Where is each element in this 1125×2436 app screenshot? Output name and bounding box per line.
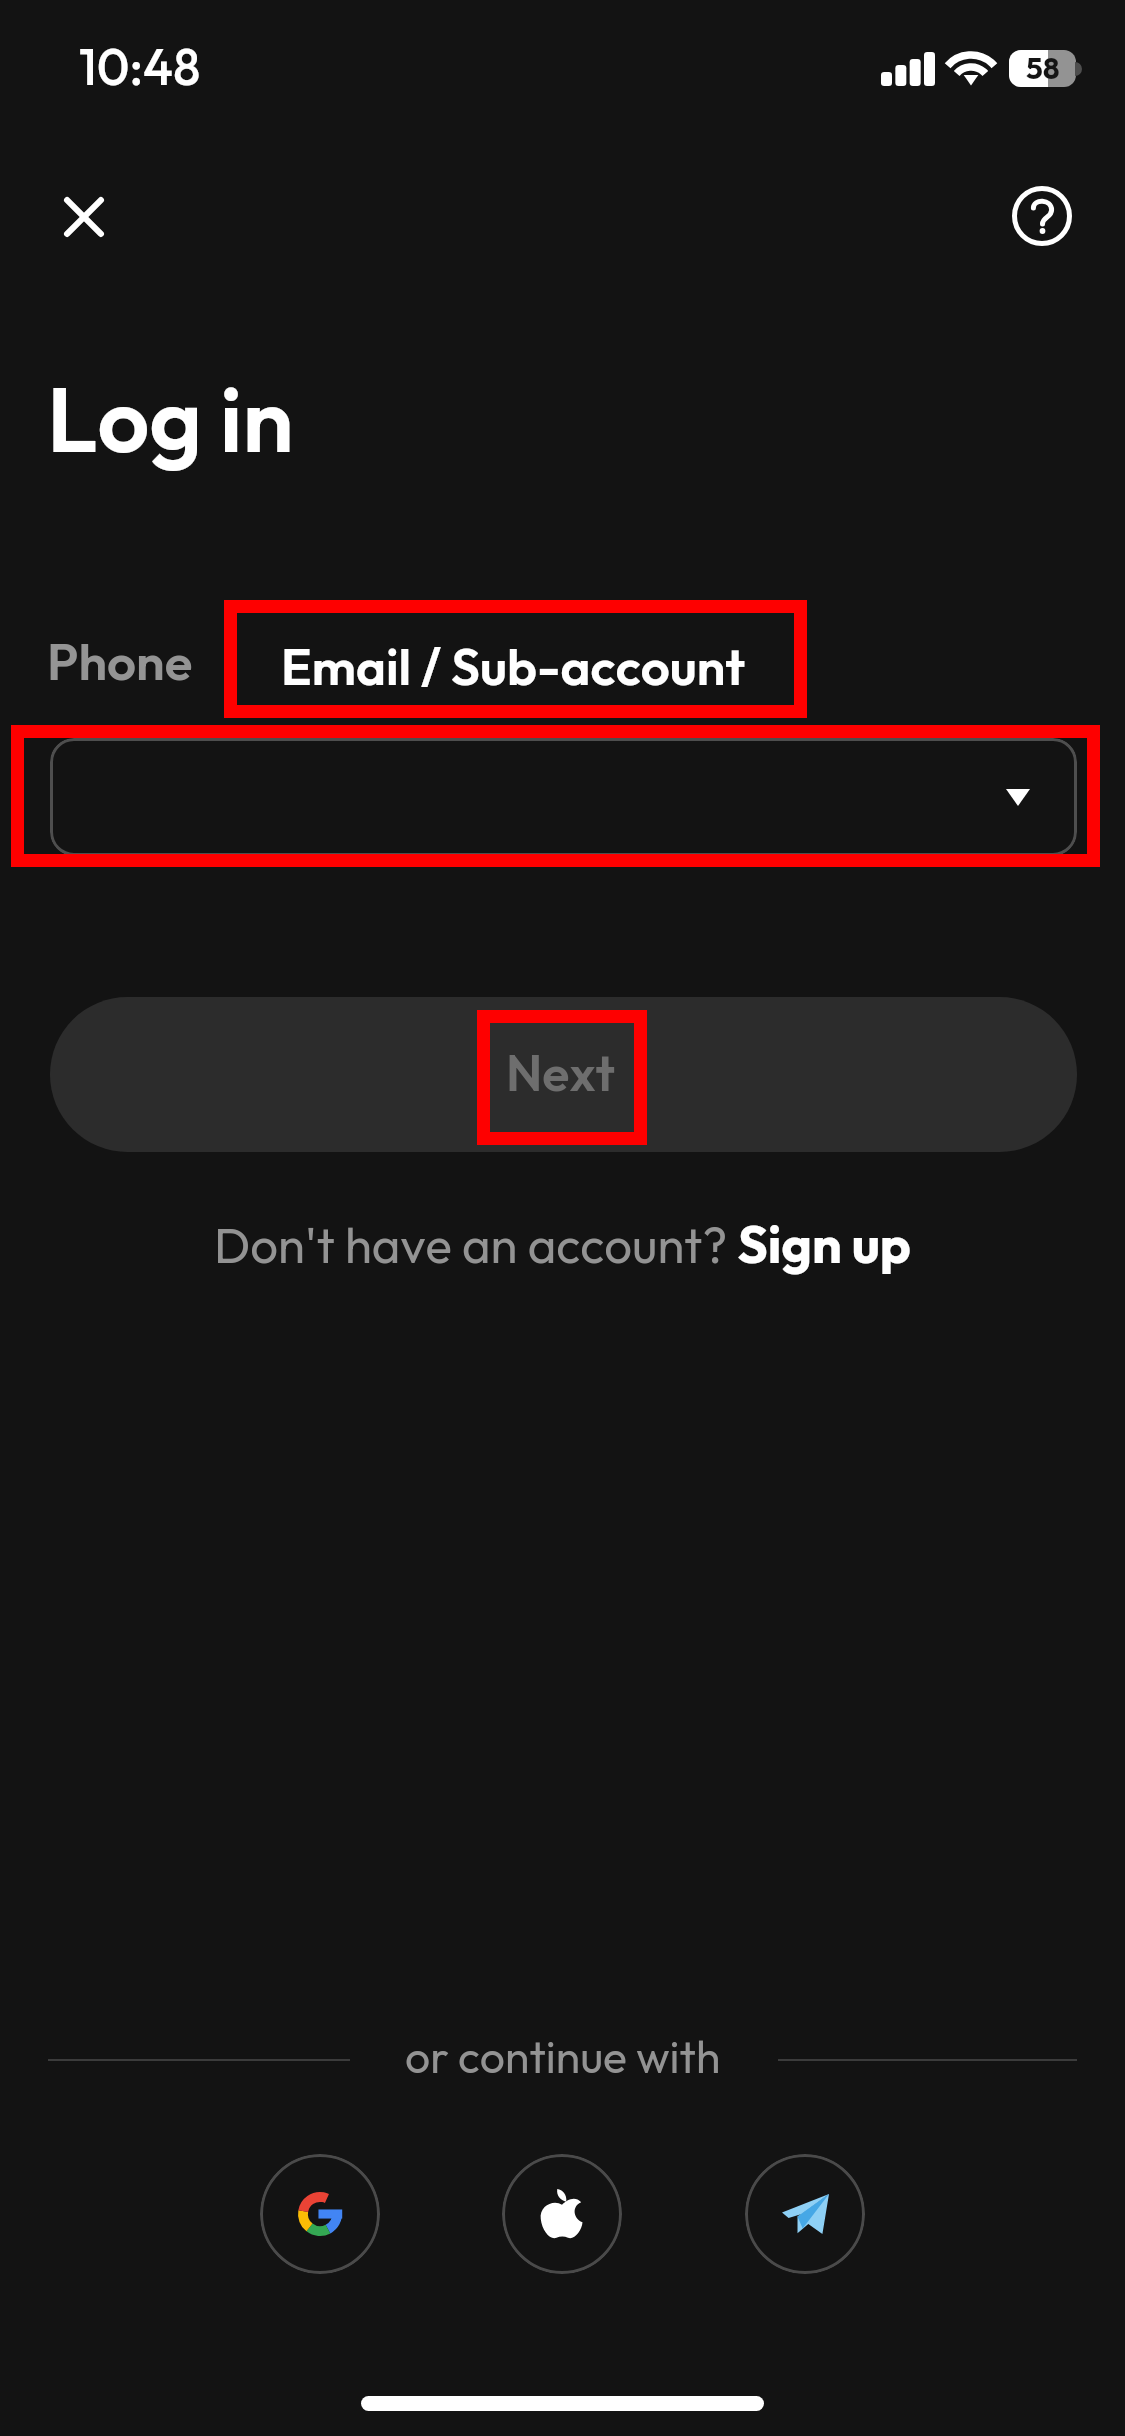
button[interactable]: Close [24,157,144,277]
button[interactable]: Email / Sub-account [275,624,752,708]
staticText: or continue with [405,2028,721,2084]
staticText: Phone [47,629,193,693]
button[interactable]: Next [50,997,1077,1152]
button[interactable]: Don't have an account? Sign up [204,1203,921,1285]
button[interactable]: Select account [50,738,1077,856]
button[interactable]: Phone [41,619,199,703]
staticText: 58 [1026,50,1060,86]
button[interactable]: Sign in with Telegram [745,2154,865,2274]
staticText: Don't have an account? Sign up [214,1211,911,1277]
staticText: Email / Sub-account [281,634,746,698]
staticText: 10:48 [79,35,201,98]
staticText: Next [506,1041,615,1104]
button[interactable]: Sign in with Apple [502,2154,622,2274]
button[interactable]: Help [982,156,1102,276]
staticText: Log in [47,361,294,476]
button[interactable]: Sign in with Google [260,2154,380,2274]
